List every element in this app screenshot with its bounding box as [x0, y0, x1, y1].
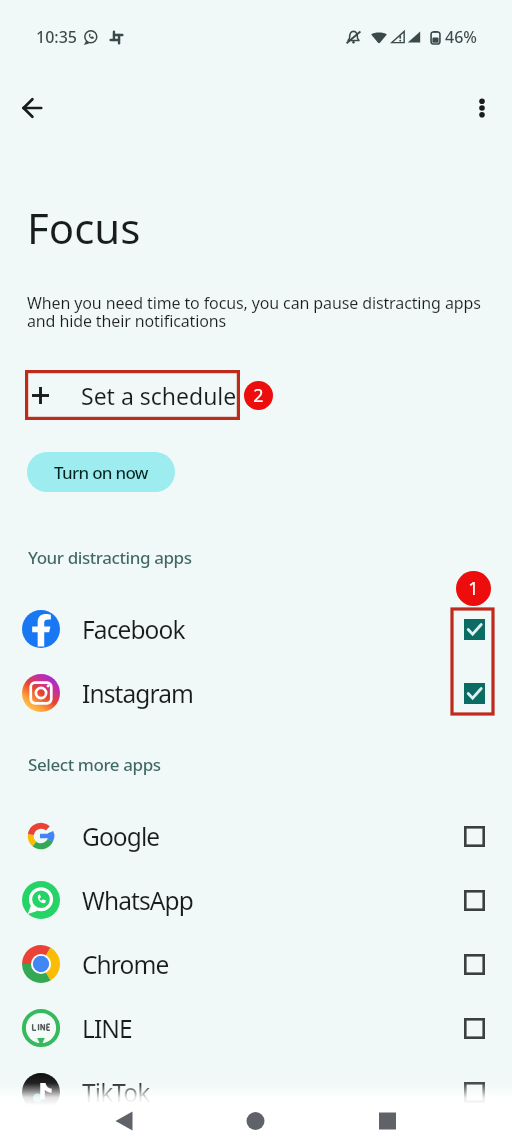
staticText: Select more apps	[28, 753, 161, 776]
staticText: Your distracting apps	[28, 546, 192, 569]
button[interactable]: TikTok	[0, 1060, 512, 1124]
button[interactable]: Toggle Instagram	[450, 669, 498, 717]
button[interactable]: Toggle Chrome	[450, 940, 498, 988]
button[interactable]: Google	[0, 804, 512, 868]
button[interactable]: WhatsApp	[0, 868, 512, 932]
staticText: 10:35	[36, 26, 77, 48]
staticText: Turn on now	[54, 461, 148, 484]
staticText: WhatsApp	[82, 884, 193, 917]
button[interactable]: Chrome	[0, 932, 512, 996]
button[interactable]: Set a schedule	[25, 370, 240, 420]
button[interactable]: Back	[100, 1095, 512, 1143]
button[interactable]: Toggle LINE	[450, 1004, 498, 1052]
staticText: TikTok	[82, 1076, 150, 1109]
button[interactable]: Instagram	[0, 661, 512, 725]
staticText: 1	[468, 576, 479, 601]
staticText: LINE	[82, 1012, 132, 1045]
staticText: Chrome	[82, 948, 169, 981]
staticText: Instagram	[82, 677, 194, 710]
staticText: 46%	[445, 26, 477, 48]
button[interactable]: Toggle WhatsApp	[450, 876, 498, 924]
staticText: Google	[82, 820, 160, 853]
button[interactable]: Turn on now	[27, 452, 175, 492]
button[interactable]: Back	[10, 86, 54, 130]
staticText: 2	[253, 383, 264, 408]
button[interactable]: Toggle Facebook	[450, 605, 498, 653]
staticText: Focus	[27, 199, 141, 256]
button[interactable]: Facebook	[0, 597, 512, 661]
button[interactable]: LINE	[0, 996, 512, 1060]
staticText: When you need time to focus, you can pau…	[27, 292, 490, 332]
staticText: Facebook	[82, 613, 185, 646]
button[interactable]: Toggle Google	[450, 812, 498, 860]
staticText: Set a schedule	[81, 380, 237, 411]
button[interactable]: Toggle TikTok	[450, 1068, 498, 1116]
button[interactable]: More options	[460, 86, 504, 130]
